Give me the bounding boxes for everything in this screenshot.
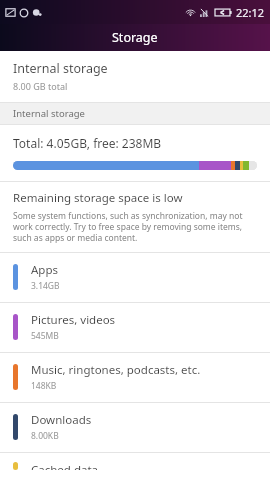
staticText: Remaining storage space is low xyxy=(13,190,183,206)
staticText: Storage xyxy=(112,29,158,46)
staticText: Apps xyxy=(31,262,59,278)
staticText: 8.00 GB total xyxy=(13,80,68,92)
staticText: 545MB xyxy=(31,330,59,342)
staticText: Internal storage xyxy=(13,60,108,77)
other: Sync xyxy=(19,8,29,18)
staticText: 3.14GB xyxy=(31,280,60,292)
staticText: Downloads xyxy=(31,412,92,428)
staticText: Cached data xyxy=(31,462,99,470)
staticText: Pictures, videos xyxy=(31,312,116,328)
other: Message xyxy=(32,8,42,18)
button[interactable]: Cached data xyxy=(0,453,270,480)
button[interactable]: Apps xyxy=(0,253,270,302)
staticText: 8.00KB xyxy=(31,430,59,442)
other: Battery xyxy=(215,8,232,17)
staticText: Some system functions, such as synchroni… xyxy=(13,210,259,243)
button[interactable]: Internal storage xyxy=(0,51,270,102)
other: Wi-Fi xyxy=(185,7,196,18)
staticText: Internal storage xyxy=(13,107,85,120)
other: Screenshot xyxy=(5,7,16,18)
button[interactable]: Pictures, videos xyxy=(0,303,270,352)
button[interactable]: Downloads xyxy=(0,403,270,452)
button[interactable]: Music, ringtones, podcasts, etc. xyxy=(0,353,270,402)
staticText: 148KB xyxy=(31,380,57,392)
staticText: Total: 4.05GB, free: 238MB xyxy=(13,135,162,151)
other: Signal xyxy=(200,8,211,17)
staticText: 22:12 xyxy=(236,5,265,20)
staticText: Music, ringtones, podcasts, etc. xyxy=(31,362,201,378)
